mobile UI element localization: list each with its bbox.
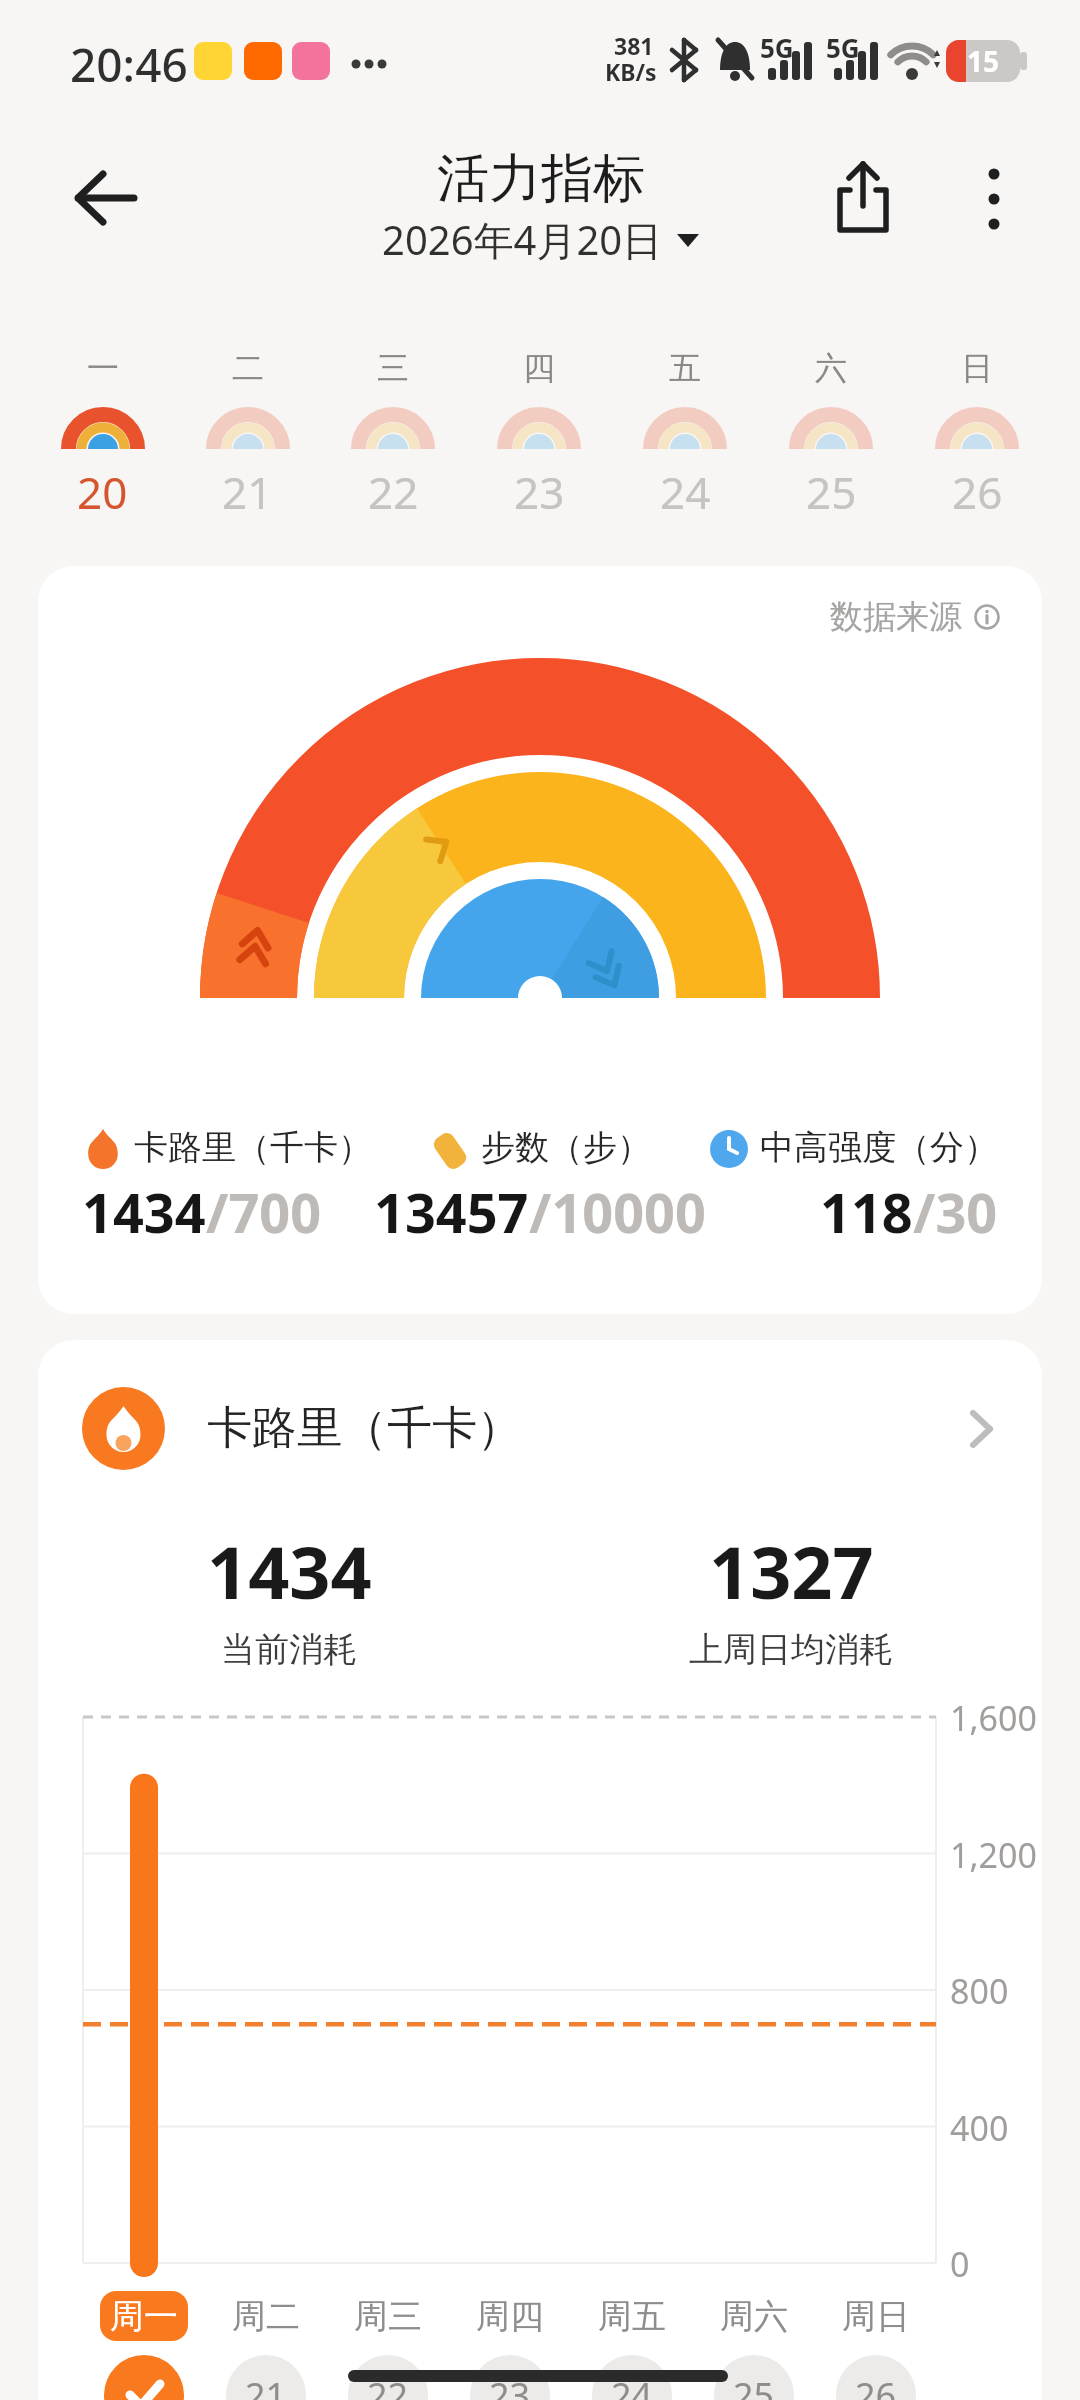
staticText: 20 xyxy=(77,462,128,522)
staticText: 5G xyxy=(760,30,794,65)
staticText: 13457 xyxy=(374,1175,529,1249)
staticText: 22 xyxy=(368,462,419,522)
button[interactable]: 21 xyxy=(226,2355,306,2400)
button[interactable] xyxy=(834,160,892,236)
button[interactable]: 卡路里（千卡） xyxy=(82,1387,997,1470)
staticText: 四 xyxy=(523,348,555,388)
staticText: 1434 xyxy=(207,1522,372,1620)
staticText: 1,600 xyxy=(950,1695,1037,1741)
staticText: 活力指标 xyxy=(437,146,645,212)
staticText: 日 xyxy=(961,348,993,388)
staticText: 20:46 xyxy=(70,33,188,96)
staticText: 一 xyxy=(87,348,119,388)
staticText: 1327 xyxy=(709,1522,874,1620)
staticText: /30 xyxy=(913,1175,998,1249)
button[interactable]: 二 xyxy=(175,348,320,522)
staticText: 21 xyxy=(245,2371,287,2400)
button[interactable]: 四 xyxy=(466,348,612,522)
staticText: 卡路里（千卡） xyxy=(207,1400,522,1457)
button[interactable]: 26 xyxy=(836,2355,916,2400)
button[interactable]: 一 xyxy=(30,348,175,522)
button[interactable] xyxy=(976,166,1012,232)
staticText: 25 xyxy=(733,2371,775,2400)
staticText: 22 xyxy=(367,2371,409,2400)
staticText: 400 xyxy=(950,2105,1009,2151)
staticText: 26 xyxy=(952,462,1003,522)
staticText: 24 xyxy=(611,2371,653,2400)
button[interactable]: 周二 xyxy=(206,2291,326,2341)
staticText: 周二 xyxy=(232,2295,300,2338)
staticText: 21 xyxy=(222,462,273,522)
staticText: 周五 xyxy=(598,2295,666,2338)
button[interactable]: 三 xyxy=(320,348,466,522)
staticText: 卡路里（千卡） xyxy=(134,1126,372,1169)
staticText: 15 xyxy=(967,42,1000,80)
staticText: 步数（步） xyxy=(481,1126,651,1169)
button[interactable]: 周三 xyxy=(328,2291,448,2341)
button[interactable]: 六 xyxy=(758,348,904,522)
button[interactable]: 周五 xyxy=(572,2291,692,2341)
staticText: 23 xyxy=(514,462,565,522)
staticText: 上周日均消耗 xyxy=(689,1628,893,1671)
staticText: /700 xyxy=(206,1175,322,1249)
staticText: 24 xyxy=(660,462,711,522)
staticText: 381 xyxy=(614,30,654,61)
button[interactable]: 2026年4月20日 xyxy=(382,212,699,267)
staticText: 800 xyxy=(950,1968,1009,2014)
button[interactable]: 周六 xyxy=(694,2291,814,2341)
button[interactable]: 周一 xyxy=(100,2291,188,2341)
staticText: 周四 xyxy=(476,2295,544,2338)
button[interactable]: 日 xyxy=(904,348,1050,522)
button[interactable] xyxy=(72,170,138,226)
staticText: 当前消耗 xyxy=(221,1628,357,1671)
button[interactable]: 数据来源 xyxy=(830,596,1000,638)
staticText: 五 xyxy=(669,348,701,388)
staticText: 23 xyxy=(489,2371,531,2400)
button[interactable]: 五 xyxy=(612,348,758,522)
button[interactable]: 周四 xyxy=(450,2291,570,2341)
staticText: 2026年4月20日 xyxy=(382,212,663,267)
button[interactable]: 23 xyxy=(470,2355,550,2400)
staticText: 118 xyxy=(820,1175,913,1249)
staticText: 三 xyxy=(377,348,409,388)
button[interactable]: 周日 xyxy=(816,2291,936,2341)
staticText: 数据来源 xyxy=(830,596,962,638)
staticText: 0 xyxy=(950,2241,970,2287)
staticText: 六 xyxy=(815,348,847,388)
staticText: 周日 xyxy=(842,2295,910,2338)
staticText: 周六 xyxy=(720,2295,788,2338)
staticText: /10000 xyxy=(529,1175,706,1249)
staticText: 1,200 xyxy=(950,1832,1037,1878)
staticText: KB/s xyxy=(605,56,657,87)
staticText: 中高强度（分） xyxy=(760,1126,998,1169)
staticText: 周一 xyxy=(110,2295,178,2338)
staticText: 周三 xyxy=(354,2295,422,2338)
staticText: 1434 xyxy=(82,1175,206,1249)
button[interactable]: 25 xyxy=(714,2355,794,2400)
button[interactable]: 22 xyxy=(348,2355,428,2400)
button[interactable]: 24 xyxy=(592,2355,672,2400)
staticText: 二 xyxy=(232,348,264,388)
staticText: 26 xyxy=(855,2371,897,2400)
staticText: 5G xyxy=(826,30,860,65)
button[interactable] xyxy=(104,2355,184,2400)
staticText: 25 xyxy=(806,462,857,522)
